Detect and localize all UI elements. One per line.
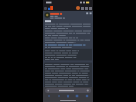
button[interactable]: Tabs [74,93,80,99]
button[interactable]: Back [46,93,52,99]
button[interactable]: Home [65,93,71,99]
button[interactable]: Tab [44,7,47,10]
button[interactable]: Account [84,93,90,99]
button[interactable]: Active tab [48,6,53,10]
button[interactable]: Search or enter address [45,88,91,93]
button[interactable]: Account [76,6,80,10]
button[interactable]: Forward [56,93,62,99]
